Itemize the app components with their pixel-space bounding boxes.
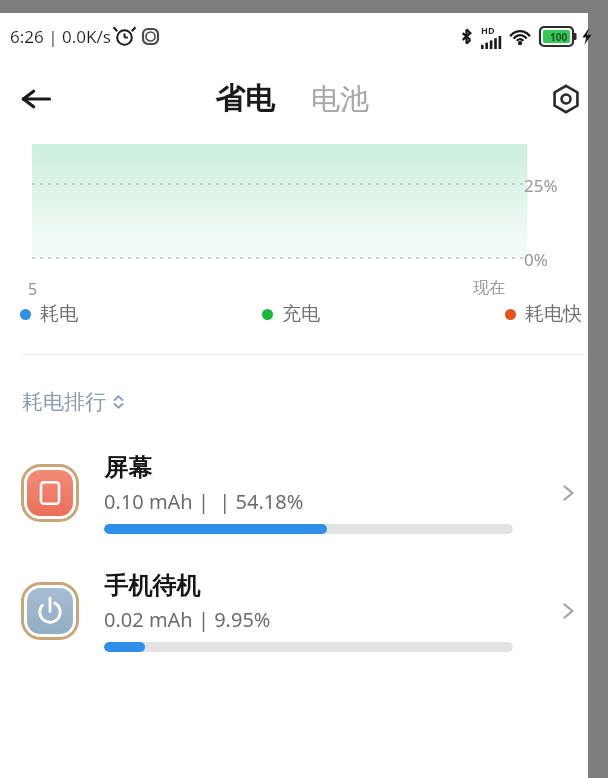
staticText: 0.10 mAh | | 54.18% (104, 488, 304, 515)
staticText: 100 (550, 30, 568, 44)
other: Details (546, 589, 590, 633)
button[interactable]: 屏幕 (0, 445, 608, 541)
staticText: 耗电排行 (22, 389, 106, 415)
staticText: 0.02 mAh | 9.95% (104, 606, 271, 633)
staticText: 电池 (311, 81, 369, 118)
staticText: 屏幕 (104, 453, 152, 483)
button[interactable]: 耗电排行 (20, 385, 127, 419)
button[interactable]: 手机待机 (0, 563, 608, 659)
button[interactable]: 充电 (262, 302, 320, 326)
staticText: 耗电快 (525, 302, 582, 326)
staticText: 耗电 (40, 302, 78, 326)
button[interactable]: 省电 (209, 74, 281, 124)
button[interactable]: 电池 (305, 75, 375, 124)
staticText: 手机待机 (104, 571, 200, 601)
button[interactable]: Settings (542, 75, 590, 123)
button[interactable]: 耗电快 (505, 302, 582, 326)
button[interactable]: 耗电 (20, 302, 78, 326)
button[interactable]: Back (8, 71, 64, 127)
staticText: 充电 (282, 302, 320, 326)
other: Details (546, 471, 590, 515)
staticText: 现在 (473, 278, 505, 298)
staticText: 6:26 | 0.0K/s (10, 25, 111, 48)
staticText: 25% (524, 174, 558, 197)
staticText: 省电 (215, 80, 275, 118)
staticText: HD (481, 24, 495, 36)
staticText: 5 (28, 278, 38, 300)
staticText: 0% (524, 248, 548, 271)
